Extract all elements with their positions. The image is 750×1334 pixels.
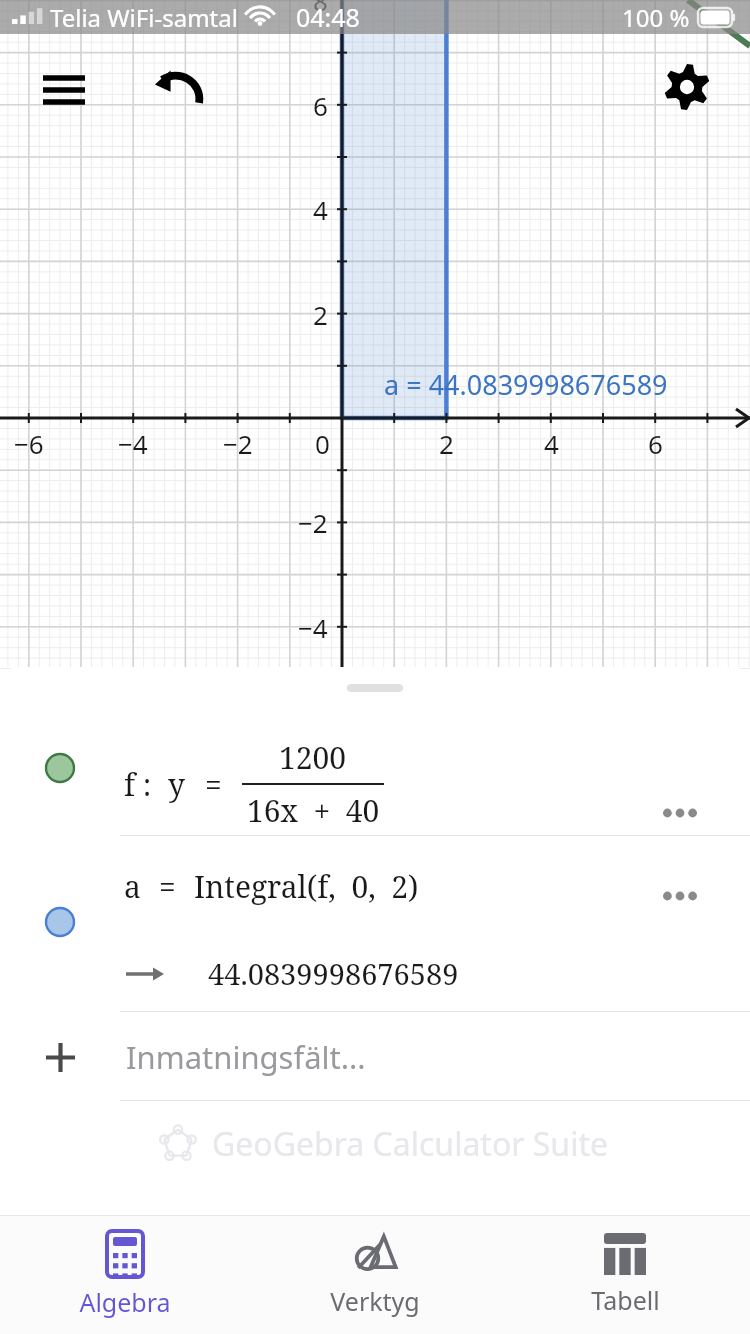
staticText: 4 bbox=[313, 192, 328, 227]
staticText: a bbox=[124, 866, 141, 907]
staticText: Algebra bbox=[79, 1285, 171, 1319]
staticText: Integral(f, 0, 2) bbox=[194, 866, 419, 907]
button[interactable]: Verktyg bbox=[250, 1216, 500, 1334]
staticText: Tabell bbox=[591, 1283, 660, 1317]
staticText: a = 44.0839998676589 bbox=[384, 366, 668, 403]
staticText: Verktyg bbox=[330, 1284, 420, 1318]
staticText: 1200 bbox=[279, 737, 347, 778]
staticText: 04:48 bbox=[296, 0, 360, 34]
staticText: = bbox=[205, 764, 222, 805]
button[interactable]: Menu bbox=[36, 62, 92, 118]
staticText: f : bbox=[124, 764, 152, 805]
button[interactable]: a bbox=[0, 836, 750, 1011]
staticText: 8 bbox=[313, 0, 328, 18]
button[interactable]: Tabell bbox=[500, 1216, 750, 1334]
staticText: 44.0839998676589 bbox=[208, 954, 459, 993]
staticText: −4 bbox=[118, 426, 148, 461]
button[interactable]: Inmatningsfält... bbox=[0, 1012, 750, 1100]
staticText: −2 bbox=[223, 426, 253, 461]
button[interactable]: Algebra bbox=[0, 1216, 250, 1334]
staticText: 4 bbox=[544, 426, 559, 461]
staticText: 100 % bbox=[622, 1, 690, 34]
staticText: = bbox=[159, 866, 176, 907]
staticText: −6 bbox=[14, 426, 44, 461]
staticText: 6 bbox=[313, 88, 328, 123]
staticText: y bbox=[168, 764, 185, 805]
button[interactable]: Undo bbox=[148, 60, 206, 118]
button[interactable]: Settings bbox=[656, 56, 718, 118]
staticText: GeoGebra Calculator Suite bbox=[212, 1122, 609, 1166]
staticText: 16x + 40 bbox=[247, 790, 380, 831]
staticText: −4 bbox=[298, 610, 328, 645]
button[interactable]: f : bbox=[0, 695, 750, 835]
button[interactable]: More options bbox=[650, 783, 710, 843]
staticText: 6 bbox=[648, 426, 663, 461]
staticText: Inmatningsfält... bbox=[126, 1036, 366, 1078]
staticText: 2 bbox=[439, 426, 454, 461]
button[interactable]: More options bbox=[650, 866, 710, 926]
staticText: Telia WiFi-samtal bbox=[50, 1, 238, 34]
staticText: 2 bbox=[313, 297, 328, 332]
staticText: −2 bbox=[298, 505, 328, 540]
staticText: 0 bbox=[315, 426, 330, 461]
